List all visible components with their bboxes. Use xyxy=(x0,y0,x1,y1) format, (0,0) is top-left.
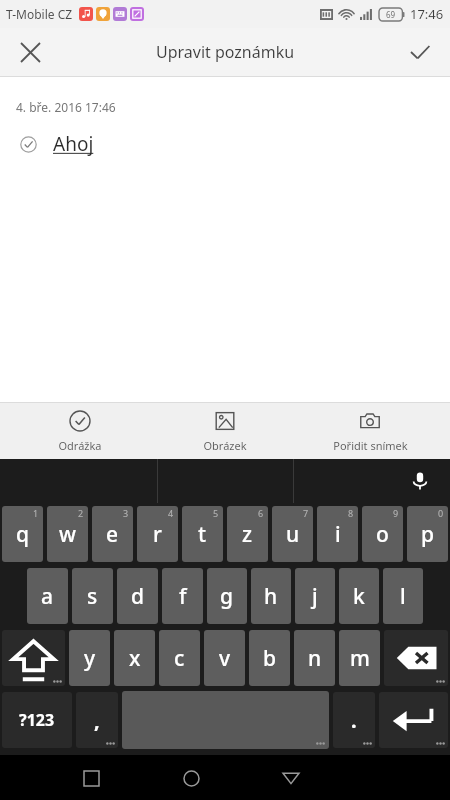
button[interactable]: c xyxy=(159,630,200,686)
button[interactable]: Enter xyxy=(379,692,448,748)
button[interactable]: y xyxy=(69,630,110,686)
staticText: e xyxy=(106,520,119,549)
staticText: r xyxy=(153,520,162,549)
staticText: t xyxy=(198,520,207,549)
staticText: 5 xyxy=(213,507,219,519)
staticText: 8 xyxy=(348,507,354,519)
button[interactable]: x xyxy=(114,630,155,686)
button[interactable]: v xyxy=(204,630,245,686)
staticText: h xyxy=(264,582,278,611)
button[interactable]: s xyxy=(72,568,113,624)
staticText: Pořidit snímek xyxy=(333,438,408,453)
button[interactable]: , xyxy=(76,692,118,748)
button[interactable]: Shift xyxy=(2,630,65,686)
staticText: 9 xyxy=(393,507,399,519)
staticText: d xyxy=(131,582,145,611)
button[interactable]: o xyxy=(362,506,403,562)
button[interactable]: n xyxy=(294,630,335,686)
button[interactable]: Home xyxy=(169,756,213,800)
staticText: 17:46 xyxy=(410,5,444,23)
staticText: Upravit poznámku xyxy=(156,41,295,63)
button[interactable]: g xyxy=(207,568,247,624)
button[interactable]: q xyxy=(2,506,43,562)
staticText: p xyxy=(421,520,435,549)
button[interactable]: Obrázek xyxy=(160,403,290,459)
staticText: 7 xyxy=(303,507,309,519)
button[interactable]: Save xyxy=(400,32,440,72)
button[interactable]: r xyxy=(137,506,178,562)
button[interactable]: Odrážka xyxy=(15,403,145,459)
staticText: j xyxy=(312,582,318,611)
staticText: Obrázek xyxy=(203,438,247,453)
button[interactable]: . xyxy=(333,692,375,748)
button[interactable]: ?123 xyxy=(2,692,72,748)
staticText: 2 xyxy=(78,507,84,519)
staticText: 4. bře. 2016 17:46 xyxy=(16,99,116,115)
staticText: m xyxy=(350,644,370,673)
staticText: i xyxy=(335,520,341,549)
button[interactable]: f xyxy=(162,568,203,624)
button[interactable]: u xyxy=(272,506,313,562)
button[interactable]: Ahoj xyxy=(0,131,450,157)
staticText: . xyxy=(351,707,357,734)
button[interactable]: Back xyxy=(269,756,313,800)
button[interactable]: p xyxy=(407,506,448,562)
staticText: , xyxy=(94,707,100,734)
button[interactable]: d xyxy=(117,568,158,624)
button[interactable]: m xyxy=(339,630,380,686)
staticText: f xyxy=(179,582,187,611)
button[interactable]: l xyxy=(383,568,423,624)
button[interactable]: t xyxy=(182,506,223,562)
button[interactable]: z xyxy=(227,506,268,562)
staticText: q xyxy=(16,520,30,549)
button[interactable]: Backspace xyxy=(384,630,448,686)
staticText: k xyxy=(353,582,365,611)
staticText: w xyxy=(59,520,76,549)
button[interactable]: h xyxy=(251,568,291,624)
button[interactable]: b xyxy=(249,630,290,686)
staticText: 6 xyxy=(258,507,264,519)
staticText: Odrážka xyxy=(58,438,102,453)
button[interactable]: i xyxy=(317,506,358,562)
staticText: x xyxy=(129,644,141,673)
staticText: z xyxy=(242,520,253,549)
button[interactable]: Close xyxy=(10,32,50,72)
button[interactable]: k xyxy=(339,568,379,624)
button[interactable]: w xyxy=(47,506,88,562)
staticText: 1 xyxy=(33,507,39,519)
staticText: 69 xyxy=(386,9,396,20)
button[interactable]: e xyxy=(92,506,133,562)
button[interactable]: Pořidit snímek xyxy=(305,403,435,459)
staticText: l xyxy=(400,582,406,611)
staticText: 3 xyxy=(123,507,129,519)
staticText: a xyxy=(41,582,54,611)
button[interactable]: j xyxy=(295,568,335,624)
button[interactable]: a xyxy=(27,568,68,624)
staticText: T-Mobile CZ xyxy=(6,6,73,22)
staticText: o xyxy=(376,520,389,549)
staticText: v xyxy=(219,644,231,673)
button[interactable]: Voice input xyxy=(404,465,436,497)
staticText: Ahoj xyxy=(53,131,94,157)
staticText: c xyxy=(174,644,185,673)
staticText: 0 xyxy=(438,507,444,519)
staticText: s xyxy=(87,582,98,611)
staticText: ?123 xyxy=(19,709,55,731)
staticText: b xyxy=(263,644,277,673)
staticText: 4 xyxy=(168,507,174,519)
button[interactable]: Recents xyxy=(69,756,113,800)
staticText: n xyxy=(308,644,322,673)
staticText: u xyxy=(286,520,300,549)
staticText: y xyxy=(84,644,96,673)
staticText: g xyxy=(220,582,234,611)
